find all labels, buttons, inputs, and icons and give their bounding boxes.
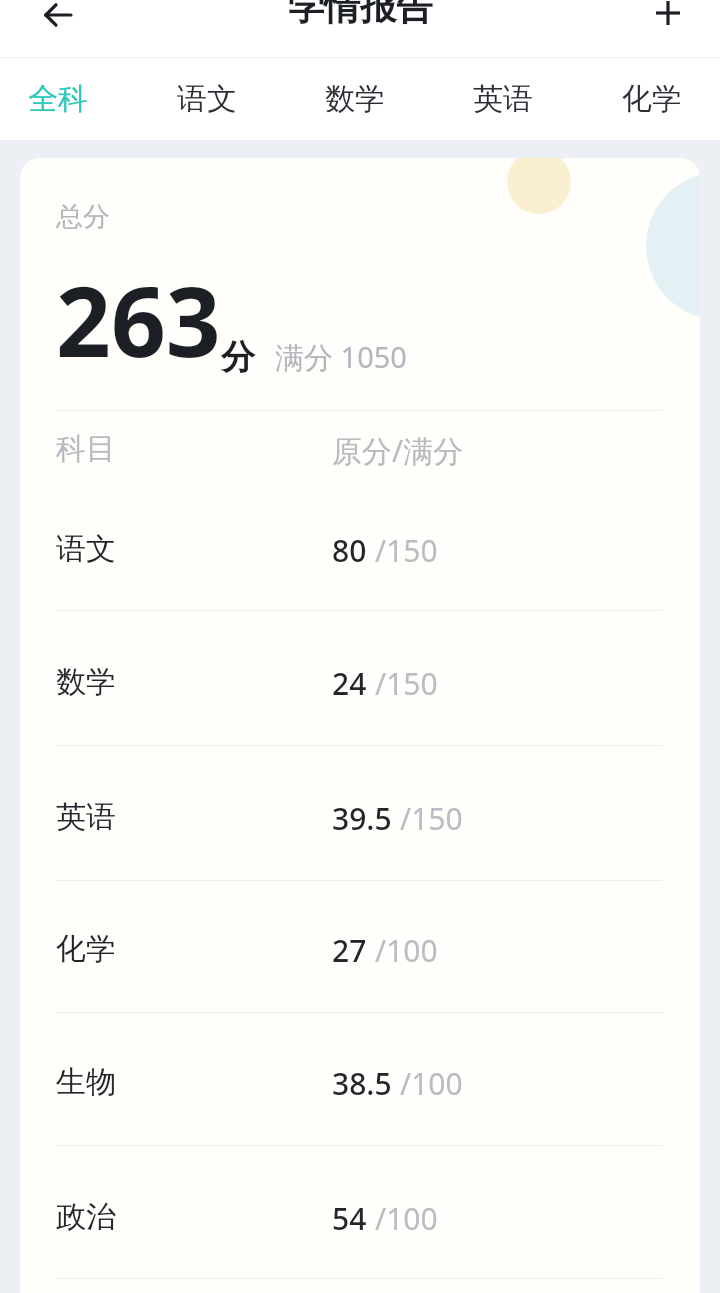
button[interactable]: 数学 — [293, 66, 417, 132]
staticText: 数学 — [325, 80, 385, 118]
staticText: /150 — [375, 663, 438, 704]
button[interactable] — [20, 1029, 700, 1163]
staticText: 38.5 — [332, 1063, 392, 1104]
staticText: 科目 — [56, 430, 116, 468]
staticText: 政治 — [56, 1198, 116, 1236]
button[interactable] — [20, 764, 700, 898]
button[interactable]: 添加 — [636, 0, 700, 42]
staticText: 分 — [221, 336, 255, 379]
staticText: /100 — [375, 930, 438, 971]
staticText: 生物 — [56, 1063, 116, 1101]
staticText: 原分/满分 — [332, 430, 464, 471]
staticText: /150 — [375, 530, 438, 571]
staticText: 27 — [332, 930, 367, 971]
button[interactable]: 化学 — [590, 66, 714, 132]
staticText: 24 — [332, 663, 367, 704]
staticText: 语文 — [56, 530, 116, 568]
button[interactable] — [20, 1164, 700, 1293]
staticText: 39.5 — [332, 798, 392, 839]
button[interactable] — [20, 496, 700, 630]
staticText: 化学 — [56, 930, 116, 968]
staticText: 263 — [56, 254, 221, 385]
staticText: 80 — [332, 530, 367, 571]
button[interactable] — [20, 629, 700, 763]
button[interactable]: 语文 — [145, 66, 269, 132]
staticText: 全科 — [28, 80, 88, 118]
button[interactable] — [20, 896, 700, 1030]
staticText: 学情报告 — [288, 0, 432, 29]
button[interactable]: 返回 — [24, 0, 88, 44]
staticText: 英语 — [473, 80, 533, 118]
staticText: 数学 — [56, 663, 116, 701]
staticText: 总分 — [56, 200, 110, 234]
button[interactable]: 全科 — [0, 66, 120, 132]
staticText: 语文 — [177, 80, 237, 118]
staticText: /150 — [400, 798, 463, 839]
staticText: 54 — [332, 1198, 367, 1239]
staticText: /100 — [375, 1198, 438, 1239]
staticText: 化学 — [622, 80, 682, 118]
staticText: 英语 — [56, 798, 116, 836]
staticText: 满分 1050 — [275, 337, 407, 377]
button[interactable]: 英语 — [441, 66, 565, 132]
staticText: /100 — [400, 1063, 463, 1104]
